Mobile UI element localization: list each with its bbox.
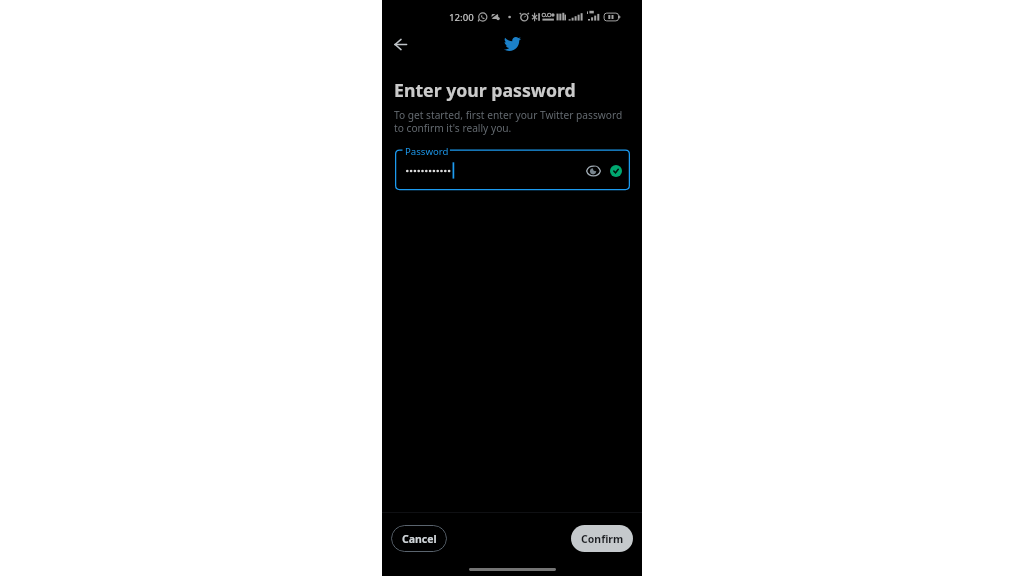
button[interactable]: Show password (582, 160, 604, 182)
staticText: Password (405, 145, 449, 158)
staticText: Enter your password (394, 78, 576, 102)
staticText: 12:00 (449, 11, 474, 24)
button[interactable]: Back (385, 28, 415, 60)
button[interactable]: Confirm (571, 525, 633, 552)
staticText: Confirm (581, 532, 624, 546)
button[interactable]: Password (395, 143, 630, 190)
staticText: Cancel (402, 532, 437, 546)
staticText: To get started, first enter your Twitter… (394, 108, 623, 135)
button[interactable]: Cancel (391, 525, 447, 552)
